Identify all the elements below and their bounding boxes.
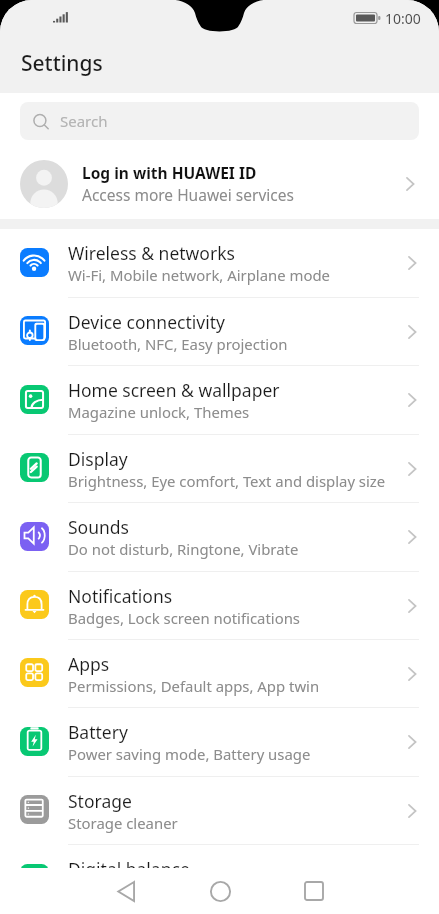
button[interactable]: Device connectivity <box>0 298 439 366</box>
staticText: Storage <box>68 789 132 813</box>
button[interactable]: Home screen & wallpaper <box>0 366 439 435</box>
staticText: Notifications <box>68 584 173 608</box>
button[interactable]: Notifications <box>0 572 439 640</box>
staticText: Power saving mode, Battery usage <box>68 744 311 764</box>
staticText: Bluetooth, NFC, Easy projection <box>68 334 288 354</box>
button[interactable]: Recent apps <box>267 868 361 914</box>
button[interactable]: Home <box>173 868 267 914</box>
staticText: Wi-Fi, Mobile network, Airplane mode <box>68 265 331 285</box>
staticText: Badges, Lock screen notifications <box>68 608 300 628</box>
staticText: Apps <box>68 652 110 676</box>
staticText: Brightness, Eye comfort, Text and displa… <box>68 471 386 491</box>
button[interactable]: Wireless & networks <box>0 229 439 298</box>
staticText: 10:00 <box>385 9 421 28</box>
button[interactable]: Sounds <box>0 503 439 572</box>
staticText: Sounds <box>68 515 129 539</box>
staticText: Screen time management <box>68 881 249 901</box>
button[interactable]: Search <box>20 102 419 140</box>
staticText: Display <box>68 447 128 471</box>
staticText: Magazine unlock, Themes <box>68 402 250 422</box>
staticText: Access more Huawei services <box>82 184 294 205</box>
button[interactable]: Storage <box>0 777 439 845</box>
staticText: Do not disturb, Ringtone, Vibrate <box>68 539 299 559</box>
staticText: Wireless & networks <box>68 241 235 265</box>
button[interactable]: Apps <box>0 640 439 708</box>
button[interactable]: Back <box>79 868 173 914</box>
button[interactable]: Display <box>0 435 439 503</box>
staticText: Search <box>60 111 108 131</box>
button[interactable]: Digital balance <box>0 845 439 914</box>
button[interactable]: Log in with HUAWEI ID <box>0 148 439 219</box>
staticText: Log in with HUAWEI ID <box>82 162 257 183</box>
staticText: Settings <box>21 49 103 78</box>
staticText: Permissions, Default apps, App twin <box>68 676 320 696</box>
staticText: Home screen & wallpaper <box>68 378 280 402</box>
staticText: Storage cleaner <box>68 813 178 833</box>
staticText: Battery <box>68 720 128 744</box>
staticText: Digital balance <box>68 857 190 881</box>
staticText: Device connectivity <box>68 310 225 334</box>
button[interactable]: Battery <box>0 708 439 777</box>
